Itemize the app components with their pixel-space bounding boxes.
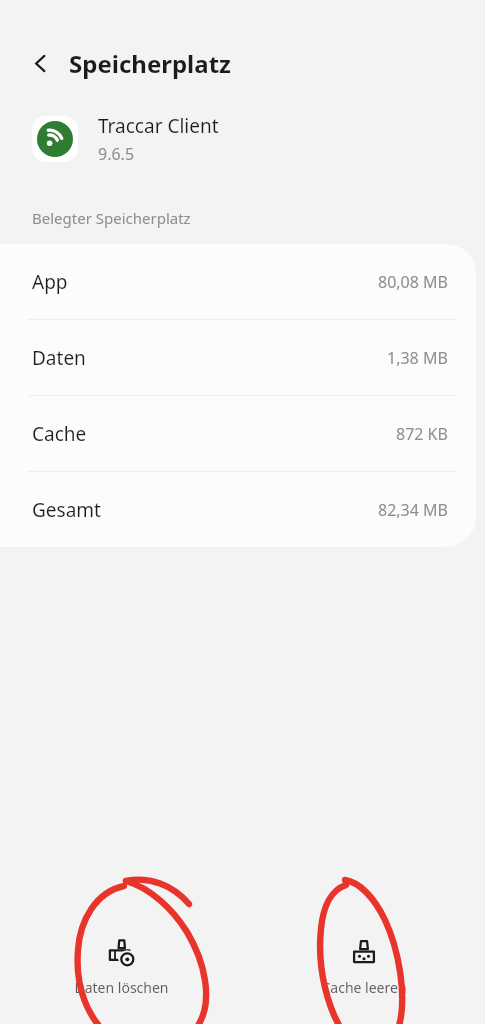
staticText: 82,34 MB [378, 499, 448, 521]
button[interactable]: Daten löschen [41, 928, 201, 997]
staticText: App [32, 269, 68, 295]
staticText: Cache leeren [321, 978, 407, 997]
button[interactable]: Cache [0, 396, 476, 471]
staticText: Gesamt [32, 497, 101, 523]
staticText: Traccar Client [98, 113, 219, 139]
staticText: 80,08 MB [378, 271, 448, 293]
button[interactable]: App [0, 244, 476, 319]
staticText: Speicherplatz [69, 47, 231, 80]
staticText: Cache [32, 421, 87, 447]
staticText: Daten löschen [74, 978, 169, 997]
staticText: 1,38 MB [387, 347, 448, 369]
button[interactable]: Daten [0, 320, 476, 395]
button[interactable]: Traccar Client [0, 106, 485, 172]
staticText: Daten [32, 345, 86, 371]
button[interactable]: Gesamt [0, 472, 476, 547]
staticText: 9.6.5 [98, 143, 135, 165]
staticText: Belegter Speicherplatz [32, 208, 191, 228]
staticText: 872 KB [396, 423, 448, 445]
button[interactable]: Cache leeren [284, 928, 444, 997]
button[interactable]: Back [21, 44, 59, 82]
